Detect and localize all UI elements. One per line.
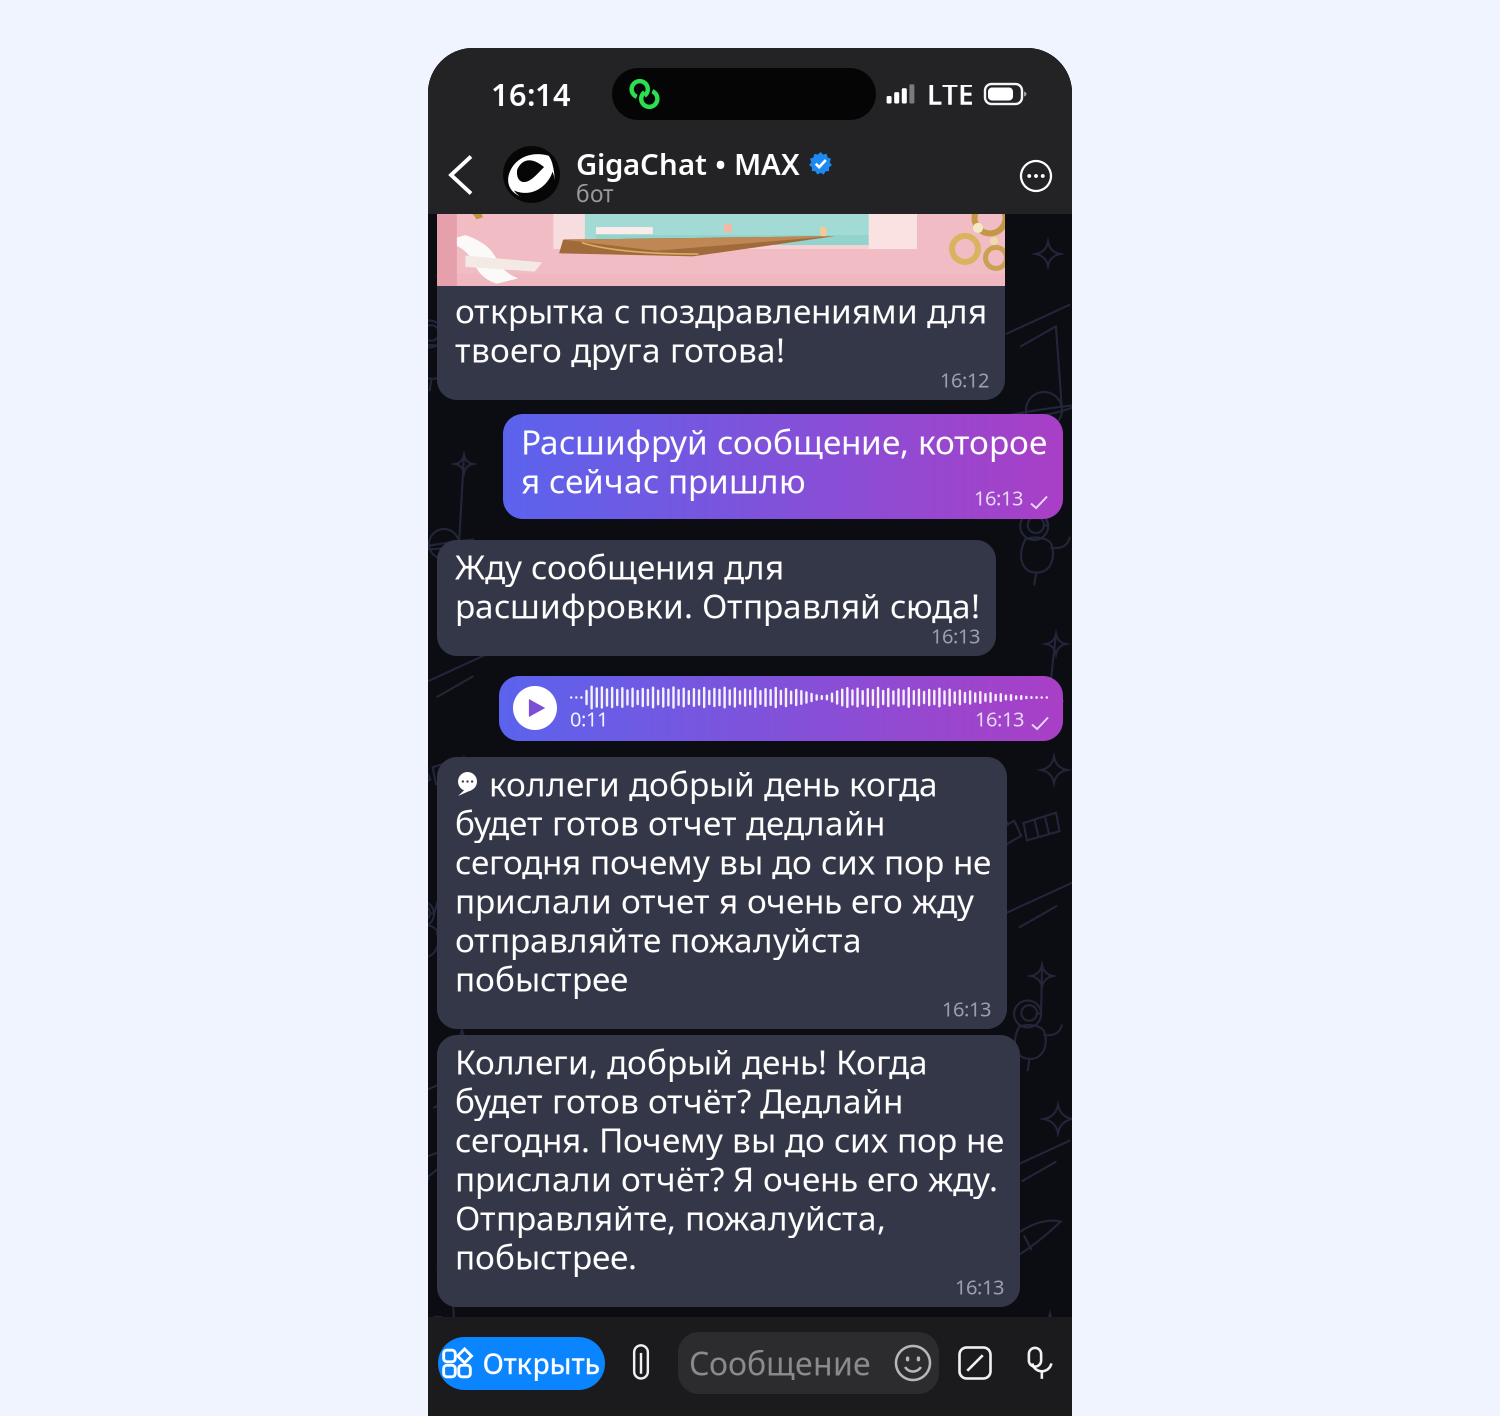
staticText: Жду сообщения для	[455, 544, 784, 589]
button[interactable]: Record voice message	[1012, 1340, 1058, 1386]
staticText: 0:11	[570, 705, 608, 732]
staticText: 16:12	[940, 366, 989, 393]
button[interactable]: Attach file	[616, 1340, 666, 1386]
button[interactable]: Жду сообщения для	[437, 540, 996, 656]
button[interactable]: Back	[439, 153, 483, 197]
button[interactable]: 0:11	[499, 676, 1063, 741]
button[interactable]: Открыть	[438, 1337, 605, 1390]
staticText: побыстрее.	[455, 1234, 637, 1279]
staticText: Расшифруй сообщение, которое	[521, 419, 1047, 464]
staticText: расшифровки. Отправляй сюда!	[455, 583, 980, 628]
staticText: будет готов отчёт? Дедлайн	[455, 1078, 903, 1123]
staticText: прислали отчёт? Я очень его жду.	[455, 1156, 998, 1201]
staticText: отправляйте пожалуйста	[455, 917, 862, 962]
staticText: сегодня почему вы до сих пор не	[455, 839, 991, 884]
staticText: Коллеги, добрый день! Когда	[455, 1039, 928, 1084]
button[interactable]: коллеги добрый день когда	[437, 757, 1007, 1029]
staticText: Сообщение	[689, 1342, 871, 1384]
staticText: 16:13	[942, 995, 991, 1022]
staticText: Отправляйте, пожалуйста,	[455, 1195, 886, 1240]
button[interactable]: открытка с поздравлениями для	[437, 134, 1005, 400]
staticText: GigaChat • MAX	[576, 144, 800, 183]
staticText: 16:13	[955, 1273, 1004, 1300]
staticText: будет готов отчет дедлайн	[455, 800, 885, 845]
staticText: 16:14	[491, 74, 571, 114]
staticText: сегодня. Почему вы до сих пор не	[455, 1117, 1004, 1162]
button[interactable]: Коллеги, добрый день! Когда	[437, 1035, 1020, 1307]
staticText: прислали отчет я очень его жду	[455, 878, 974, 923]
staticText: бот	[576, 178, 614, 209]
button[interactable]: More	[1014, 154, 1058, 198]
staticText: 16:13	[931, 622, 980, 649]
button[interactable]: GigaChat • MAX	[503, 146, 832, 203]
staticText: открытка с поздравлениями для	[455, 288, 987, 333]
staticText: LTE	[927, 75, 974, 113]
staticText: побыстрее	[455, 956, 628, 1001]
staticText: 16:13	[975, 705, 1024, 732]
staticText: Открыть	[482, 1345, 600, 1382]
button[interactable]: Draw	[952, 1340, 998, 1386]
button[interactable]: Emoji	[890, 1340, 936, 1386]
staticText: твоего друга готова!	[455, 327, 785, 372]
staticText: я сейчас пришлю	[521, 458, 806, 503]
staticText: коллеги добрый день когда	[489, 761, 938, 806]
staticText: 16:13	[974, 484, 1023, 511]
button[interactable]: Расшифруй сообщение, которое	[503, 414, 1063, 519]
